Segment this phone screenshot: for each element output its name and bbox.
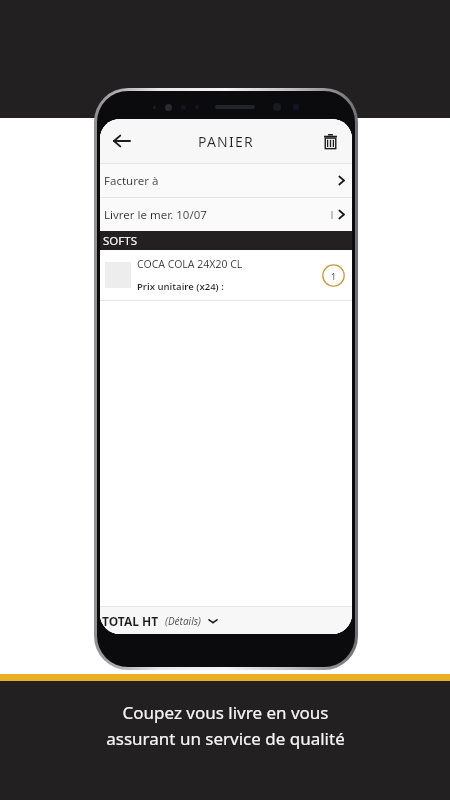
staticText: TOTAL HT <box>102 613 159 629</box>
staticText: PANIER <box>198 132 254 151</box>
staticText: Prix unitaire (x24) : <box>137 280 224 293</box>
button[interactable]: Back <box>100 119 144 163</box>
staticText: 1 <box>331 270 337 282</box>
button[interactable]: TOTAL HT <box>100 607 352 634</box>
staticText: Coupez vous livre en vous assurant un se… <box>106 701 345 750</box>
staticText: Livrer le mer. 10/07 <box>104 207 207 223</box>
button[interactable]: Livrer le mer. 10/07 <box>100 198 352 231</box>
staticText: SOFTS <box>103 233 137 249</box>
button[interactable]: Facturer à <box>100 164 352 197</box>
button[interactable]: Delete cart <box>308 119 352 163</box>
staticText: (Détails) <box>165 614 201 628</box>
button[interactable]: COCA COLA 24X20 CL <box>100 250 352 300</box>
staticText: Facturer à <box>104 173 159 189</box>
staticText: COCA COLA 24X20 CL <box>137 257 243 271</box>
